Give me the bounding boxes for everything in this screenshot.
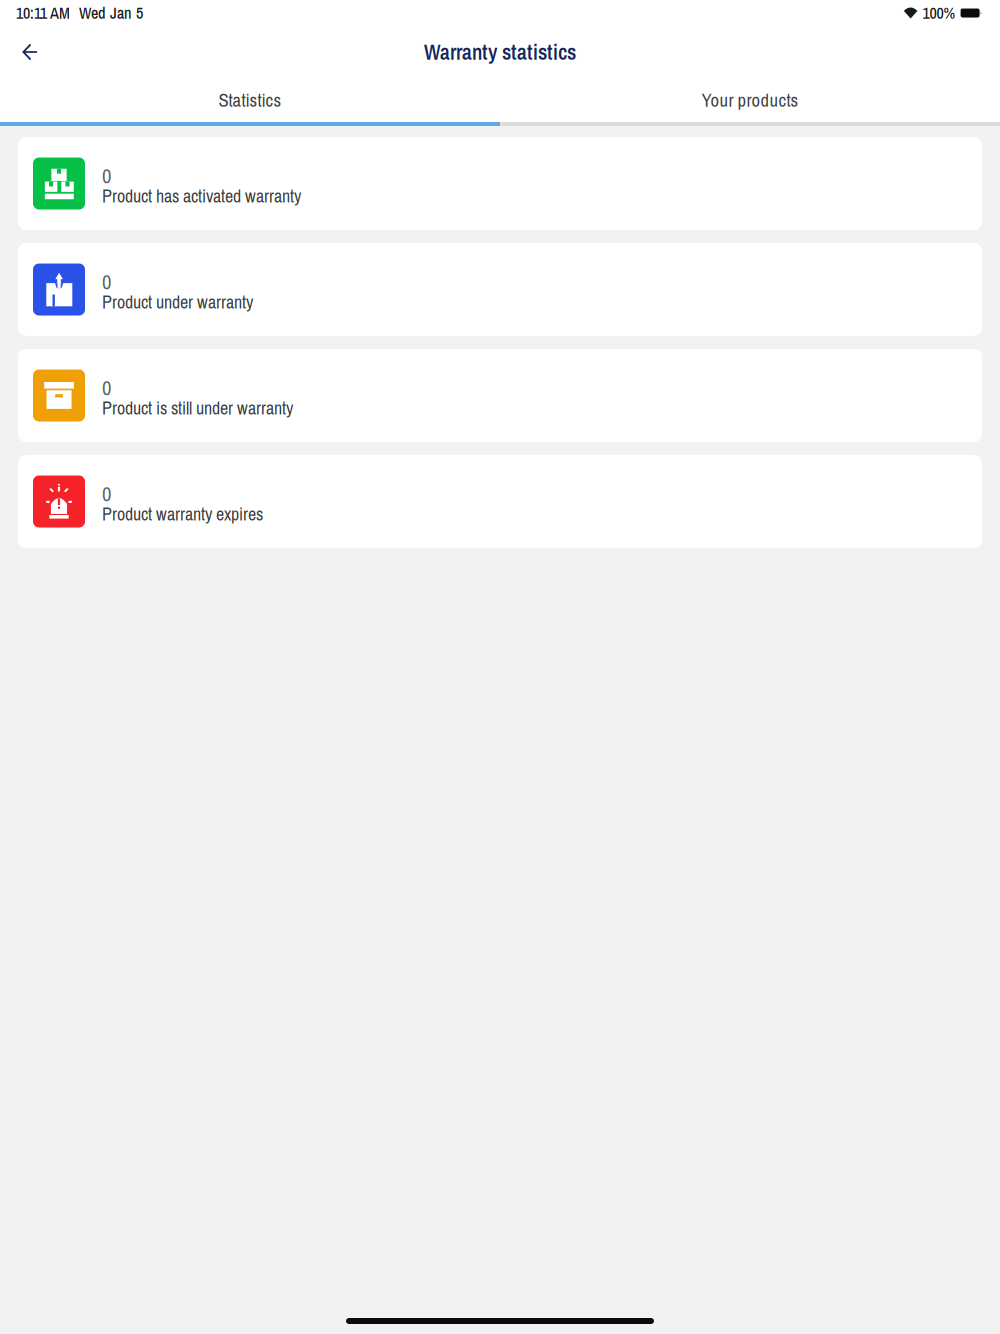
staticText: 10:11 AM xyxy=(16,2,70,24)
staticText: 0 xyxy=(102,374,111,402)
staticText: 100% xyxy=(923,2,956,24)
staticText: Product warranty expires xyxy=(102,502,263,526)
staticText: Wed Jan 5 xyxy=(79,2,143,24)
staticText: Product under warranty xyxy=(102,290,253,314)
button[interactable]: 0 xyxy=(18,349,982,442)
button[interactable]: 0 xyxy=(18,243,982,336)
staticText: Your products xyxy=(701,87,798,112)
staticText: Product is still under warranty xyxy=(102,396,293,420)
staticText: 0 xyxy=(102,162,111,190)
button[interactable]: Your products xyxy=(500,78,1000,122)
staticText: 0 xyxy=(102,480,111,508)
staticText: Product has activated warranty xyxy=(102,184,301,208)
button[interactable]: 0 xyxy=(18,137,982,230)
staticText: Statistics xyxy=(218,87,281,112)
button[interactable]: 0 xyxy=(18,455,982,548)
staticText: Warranty statistics xyxy=(424,38,576,66)
button[interactable]: Back xyxy=(3,26,57,78)
staticText: 0 xyxy=(102,268,111,296)
button[interactable]: Statistics xyxy=(0,78,500,122)
